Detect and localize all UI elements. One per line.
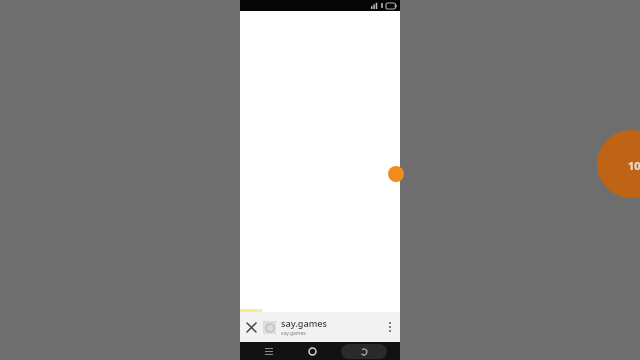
button[interactable]: Home xyxy=(297,343,327,359)
staticText: say.games xyxy=(281,317,327,329)
button[interactable]: More options xyxy=(380,317,400,337)
staticText: say.games xyxy=(281,330,306,337)
button[interactable]: say.games xyxy=(281,317,380,337)
button[interactable]: Close xyxy=(240,316,262,338)
button[interactable]: Clock bubble 10:45 xyxy=(597,130,640,198)
button[interactable]: Recent apps xyxy=(254,343,284,359)
staticText: 10:45 xyxy=(628,158,640,173)
button[interactable]: Floating action xyxy=(388,166,404,182)
button[interactable]: Back xyxy=(341,344,387,359)
